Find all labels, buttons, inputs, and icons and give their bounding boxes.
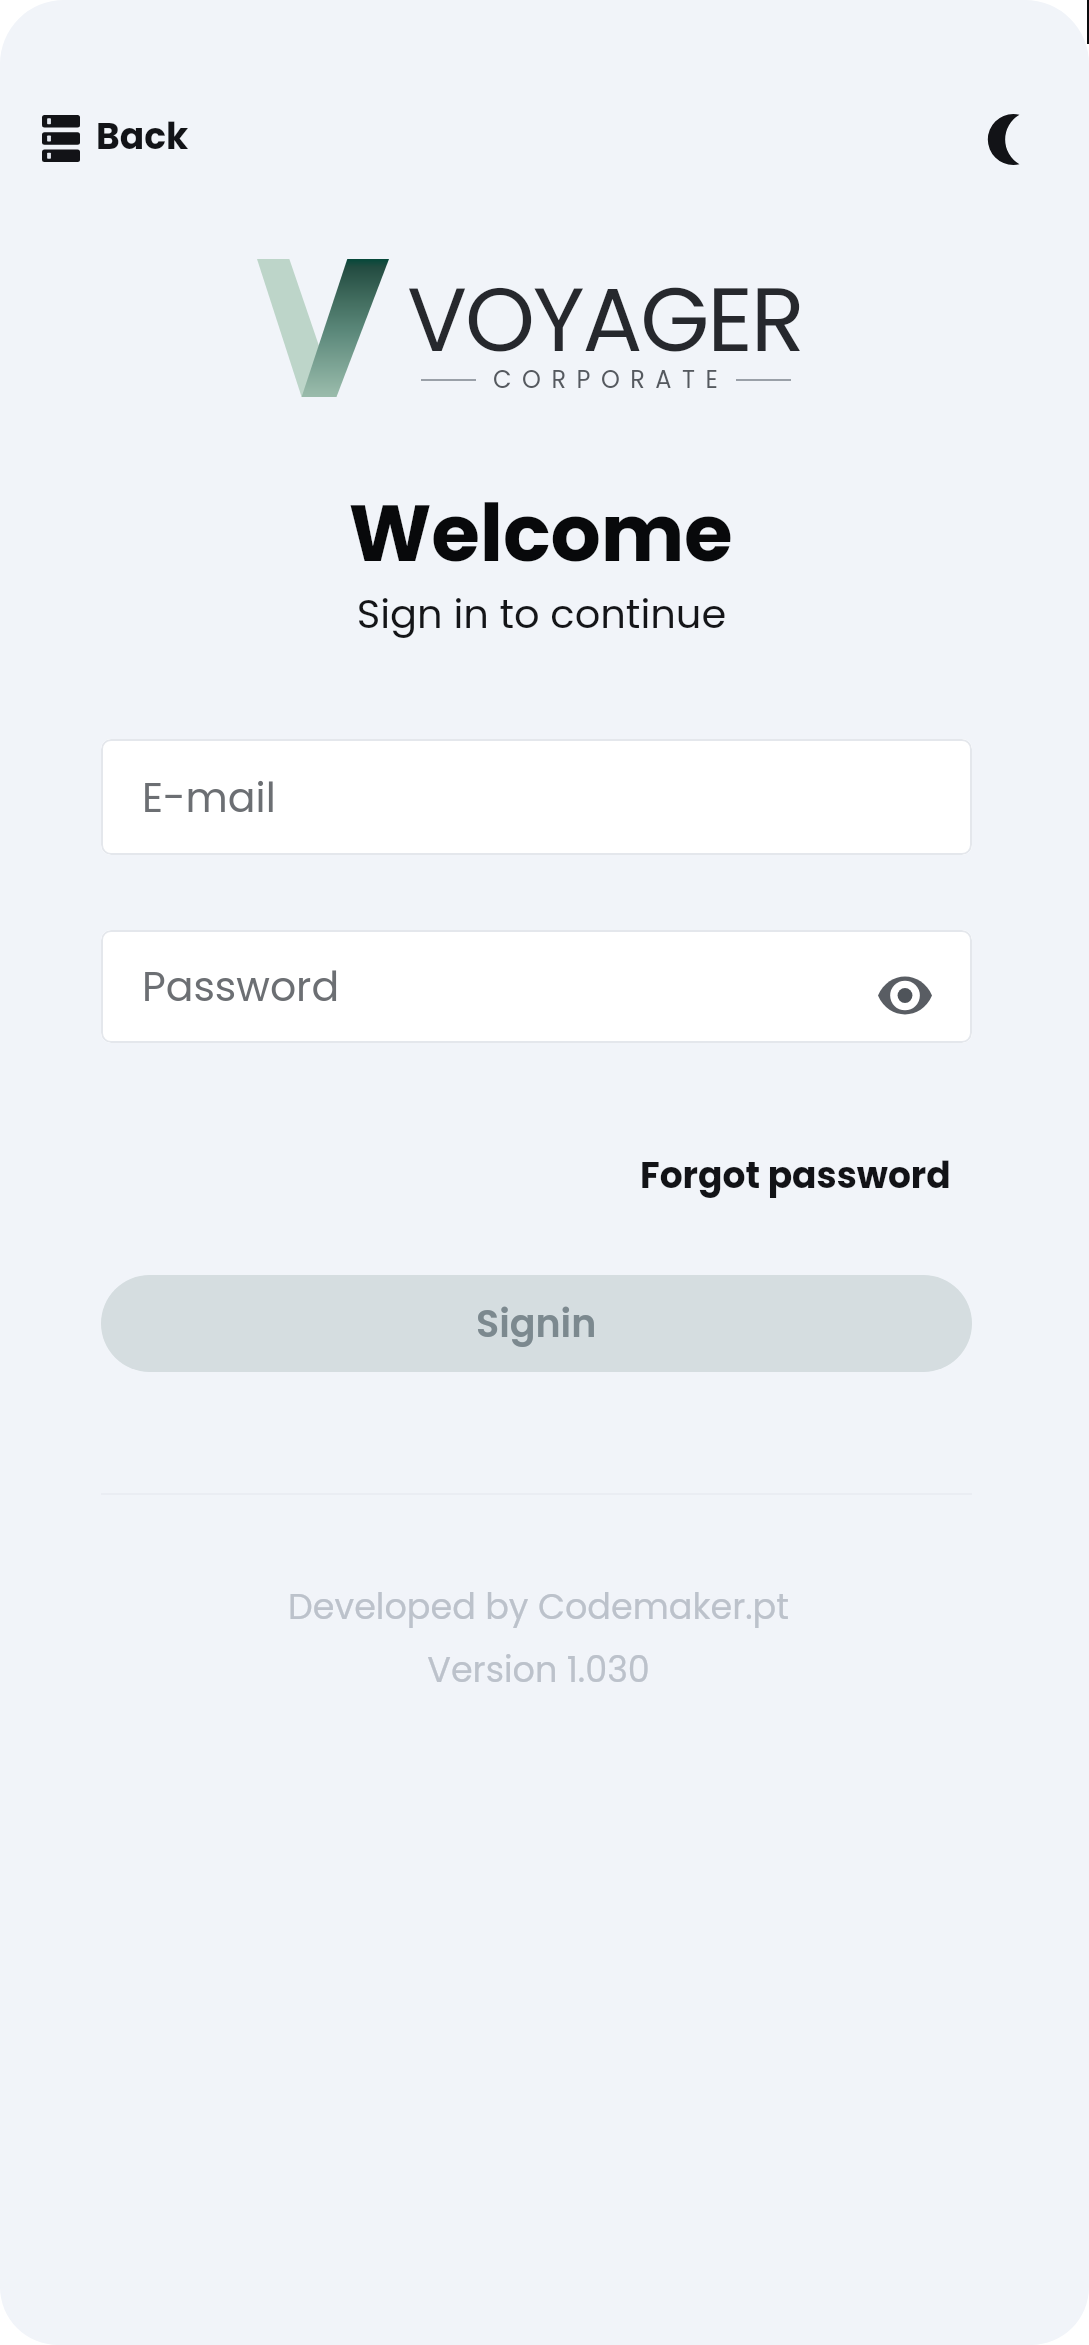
staticText: Back xyxy=(96,111,189,161)
staticText: CORPORATE xyxy=(493,363,729,397)
staticText: Sign in to continue xyxy=(0,586,1086,642)
staticText: Developed by Codemaker.pt xyxy=(0,1582,1083,1631)
button[interactable]: Signin xyxy=(101,1275,972,1372)
button[interactable]: Back xyxy=(36,107,195,169)
staticText: VOYAGER xyxy=(407,258,803,383)
button[interactable]: Toggle dark mode xyxy=(992,108,1054,170)
staticText: Password xyxy=(142,958,340,1015)
staticText: Welcome xyxy=(0,478,1085,589)
button[interactable]: Forgot password xyxy=(628,1139,963,1211)
staticText: E-mail xyxy=(142,769,276,826)
button[interactable]: Password xyxy=(101,930,972,1043)
staticText: Version 1.030 xyxy=(0,1645,1083,1694)
button[interactable]: Show password xyxy=(874,964,936,1026)
staticText: Signin xyxy=(476,1297,597,1350)
button[interactable]: E-mail xyxy=(101,739,972,855)
staticText: Forgot password xyxy=(640,1150,951,1200)
